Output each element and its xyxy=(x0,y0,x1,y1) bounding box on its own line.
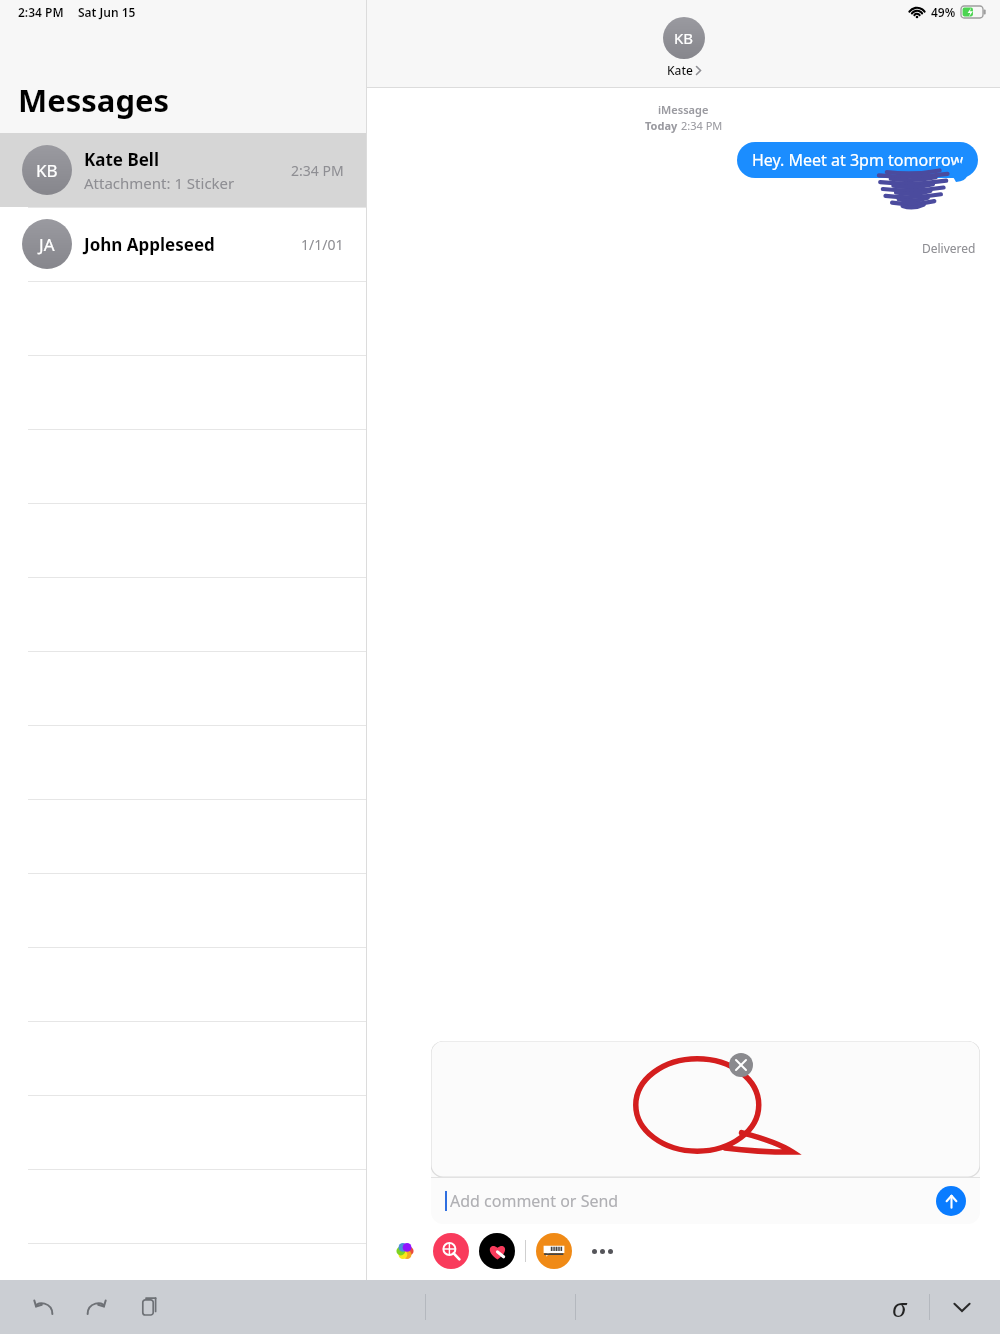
staticText: 2:34 PM xyxy=(18,4,64,20)
staticText: Messages xyxy=(18,79,170,121)
button[interactable]: KB xyxy=(663,17,705,78)
staticText: KB xyxy=(36,159,58,182)
staticText: Hey. Meet at 3pm tomorrow xyxy=(752,149,963,171)
staticText: Kate Bell xyxy=(84,148,160,171)
button[interactable]: Digital Touch xyxy=(479,1233,515,1269)
staticText: iMessage xyxy=(658,102,709,117)
button[interactable]: Hide keyboard xyxy=(942,1287,982,1327)
button[interactable]: Send xyxy=(936,1186,966,1216)
button[interactable]: Undo xyxy=(24,1287,64,1327)
button[interactable]: Remove sticker xyxy=(729,1053,753,1077)
staticText: Attachment: 1 Sticker xyxy=(84,173,235,193)
button[interactable]: Handwriting xyxy=(877,1285,921,1329)
staticText: 2:34 PM xyxy=(291,161,344,180)
staticText: Sat Jun 15 xyxy=(78,4,136,20)
staticText: 1/1/01 xyxy=(301,235,344,254)
button[interactable]: KB xyxy=(0,133,366,207)
staticText: Today xyxy=(645,118,681,133)
staticText: σ xyxy=(892,1290,907,1324)
button[interactable]: Images search xyxy=(433,1233,469,1269)
button[interactable]: Redo xyxy=(76,1287,116,1327)
button[interactable]: Paste xyxy=(128,1287,168,1327)
staticText: 49% xyxy=(931,4,956,20)
button[interactable]: JA xyxy=(0,207,366,281)
staticText: Kate xyxy=(667,62,693,78)
button[interactable]: Sticker app xyxy=(536,1233,572,1269)
staticText: KB xyxy=(674,28,694,48)
staticText: 2:34 PM xyxy=(681,118,723,133)
button[interactable]: Add comment or Send xyxy=(431,1178,980,1224)
staticText: JA xyxy=(39,233,55,256)
button[interactable]: Photos xyxy=(387,1233,423,1269)
button[interactable]: More apps xyxy=(584,1233,620,1269)
button[interactable]: Hey. Meet at 3pm tomorrow xyxy=(737,142,978,178)
staticText: John Appleseed xyxy=(84,233,215,256)
staticText: Delivered xyxy=(922,240,976,256)
staticText: Add comment or Send xyxy=(450,1190,619,1212)
